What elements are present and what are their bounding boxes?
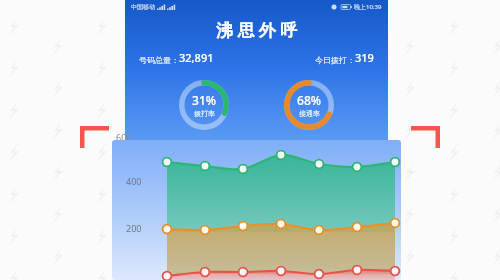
staticText: 68% [297,92,321,108]
button[interactable]: 接通率 [282,78,336,132]
staticText: 中国移动 [131,3,155,11]
staticText: 400 [126,175,142,187]
staticText: 32,891 [179,50,214,65]
staticText: 号码总量： [139,55,179,65]
staticText: 接通率 [299,109,320,118]
staticText: 31% [192,92,216,108]
staticText: 319 [355,50,374,65]
staticText: 600 [116,131,132,143]
staticText: 沸 思 外 呼 [216,18,298,41]
button[interactable]: 拨打率 [177,78,231,132]
staticText: 今日拨打： [315,55,355,65]
staticText: 200 [126,222,142,234]
staticText: 晚上10:39 [354,3,382,11]
staticText: 拨打率 [194,109,215,118]
button[interactable]: 400 [112,140,401,280]
